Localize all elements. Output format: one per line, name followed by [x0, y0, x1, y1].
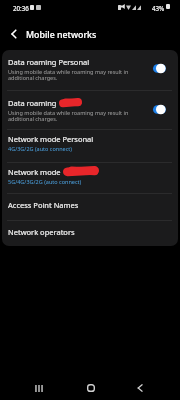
staticText: Network mode	[8, 167, 61, 177]
button[interactable]: Back	[128, 373, 152, 400]
button[interactable]: Home	[79, 373, 103, 400]
button[interactable]: Data roaming	[2, 91, 178, 129]
staticText: Data roaming	[8, 98, 59, 108]
button[interactable]: Network mode Personal	[2, 130, 178, 162]
staticText: Using mobile data while roaming may resu…	[8, 109, 129, 122]
staticText: Network operators	[8, 227, 75, 237]
button[interactable]: Network mode	[2, 163, 178, 193]
staticText: 20:36	[13, 4, 29, 12]
staticText: Access Point Names	[8, 200, 79, 210]
button[interactable]: Data roaming Personal	[2, 50, 178, 90]
staticText: Mobile networks	[26, 29, 97, 41]
staticText: Using mobile data while roaming may resu…	[8, 68, 129, 81]
button[interactable]: Toggle data roaming	[153, 104, 172, 115]
staticText: 4G/3G/2G (auto connect)	[8, 145, 72, 152]
button[interactable]: Recent apps	[27, 373, 51, 400]
button[interactable]: Toggle data roaming	[153, 63, 172, 74]
staticText: Data roaming Personal	[8, 57, 90, 67]
staticText: 5G/4G/3G/2G (auto connect)	[8, 178, 82, 185]
button[interactable]: Navigate up	[6, 26, 22, 42]
button[interactable]: Access Point Names	[2, 194, 178, 220]
button[interactable]: Network operators	[2, 221, 178, 246]
staticText: Network mode Personal	[8, 134, 94, 144]
staticText: 43%	[152, 4, 165, 12]
